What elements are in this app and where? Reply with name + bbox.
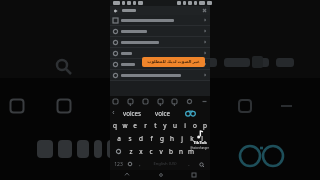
button[interactable]: Translate [172, 99, 177, 104]
button[interactable]: Glasses emoji [177, 106, 204, 119]
staticText: 123 [114, 161, 123, 168]
button[interactable]: Open [110, 70, 210, 80]
staticText: @voicechanger [190, 146, 209, 150]
other: Open [203, 18, 207, 22]
button[interactable]: w [120, 119, 130, 132]
staticText: a [117, 134, 121, 143]
button[interactable]: h [167, 132, 177, 145]
button[interactable]: k [187, 132, 197, 145]
staticText: o [193, 121, 197, 130]
button[interactable]: Recents [177, 170, 210, 180]
button[interactable]: e [130, 119, 140, 132]
staticText: d [139, 134, 143, 143]
button[interactable]: Clipboard [143, 99, 148, 104]
button[interactable]: , [135, 158, 145, 170]
staticText: English (US) [153, 161, 177, 167]
button[interactable]: u [170, 119, 180, 132]
button[interactable]: a [113, 132, 124, 145]
button[interactable]: r [140, 119, 150, 132]
staticText: z [129, 147, 133, 156]
button[interactable]: o [190, 119, 200, 132]
button[interactable]: Back [110, 6, 210, 15]
button[interactable]: voice [147, 106, 177, 119]
button[interactable]: f [146, 132, 157, 145]
staticText: g [160, 134, 164, 143]
staticText: . [188, 161, 190, 168]
staticText: voice [155, 109, 170, 117]
button[interactable]: Stickers [113, 99, 118, 104]
staticText: k [190, 134, 194, 143]
other: Open [203, 51, 207, 55]
button[interactable]: English (US) [145, 158, 184, 170]
button[interactable]: Emoji [158, 99, 163, 104]
staticText: m [188, 147, 194, 156]
button[interactable]: t [150, 119, 160, 132]
staticText: w [122, 121, 128, 130]
staticText: f [150, 134, 153, 143]
button[interactable]: l [197, 132, 207, 145]
button[interactable]: j [177, 132, 187, 145]
staticText: i [184, 121, 186, 130]
button[interactable]: Open [110, 37, 210, 47]
button[interactable]: Search [194, 158, 208, 170]
button[interactable]: m [186, 145, 196, 158]
button[interactable]: y [160, 119, 170, 132]
other: Open [203, 29, 207, 33]
other: Clear [202, 8, 207, 13]
staticText: q [113, 121, 117, 130]
other: Open [203, 73, 207, 77]
button[interactable]: v [156, 145, 166, 158]
staticText: TikTok [193, 140, 207, 146]
staticText: v [159, 147, 163, 156]
staticText: x [139, 147, 143, 156]
staticText: u [173, 121, 177, 130]
button[interactable]: Open [110, 26, 210, 36]
button[interactable]: Open [110, 48, 210, 58]
other: Back [113, 8, 119, 14]
button[interactable]: s [124, 132, 135, 145]
staticText: voices [123, 109, 141, 117]
button[interactable]: z [125, 145, 136, 158]
button[interactable]: Home [144, 170, 177, 180]
other: Open [203, 40, 207, 44]
button[interactable]: n [176, 145, 186, 158]
button[interactable]: Back [110, 170, 144, 180]
staticText: h [170, 134, 174, 143]
button[interactable]: c [146, 145, 156, 158]
staticText: j [181, 134, 183, 143]
staticText: e [133, 121, 137, 130]
button[interactable]: d [135, 132, 146, 145]
button[interactable]: i [180, 119, 190, 132]
staticText: n [179, 147, 183, 156]
button[interactable]: g [157, 132, 167, 145]
button[interactable]: Backspace [196, 145, 208, 158]
button[interactable]: x [136, 145, 146, 158]
button[interactable]: Settings [187, 99, 192, 104]
staticText: b [169, 147, 173, 156]
staticText: c [149, 147, 153, 156]
staticText: y [163, 121, 167, 130]
button[interactable]: Previous [110, 106, 116, 119]
button[interactable]: voices [116, 106, 147, 119]
button[interactable]: b [166, 145, 176, 158]
button[interactable]: q [110, 119, 120, 132]
staticText: r [144, 121, 147, 130]
button[interactable]: Open [110, 15, 210, 25]
staticText: s [128, 134, 132, 143]
button[interactable]: Emoji [125, 158, 135, 170]
staticText: t [154, 121, 157, 130]
button[interactable]: GIF [128, 99, 133, 104]
staticText: p [203, 121, 207, 130]
other: Open [203, 62, 207, 66]
staticText: l [201, 134, 203, 143]
staticText: , [139, 161, 141, 168]
staticText: غير الصوت لديك للمطلوب [147, 59, 200, 65]
button[interactable]: More [202, 99, 207, 104]
button[interactable]: Open [110, 59, 210, 69]
button[interactable]: p [200, 119, 210, 132]
button[interactable]: 123 [112, 158, 125, 170]
button[interactable]: غير الصوت لديك للمطلوب [142, 57, 205, 67]
button[interactable]: Shift [112, 145, 125, 158]
